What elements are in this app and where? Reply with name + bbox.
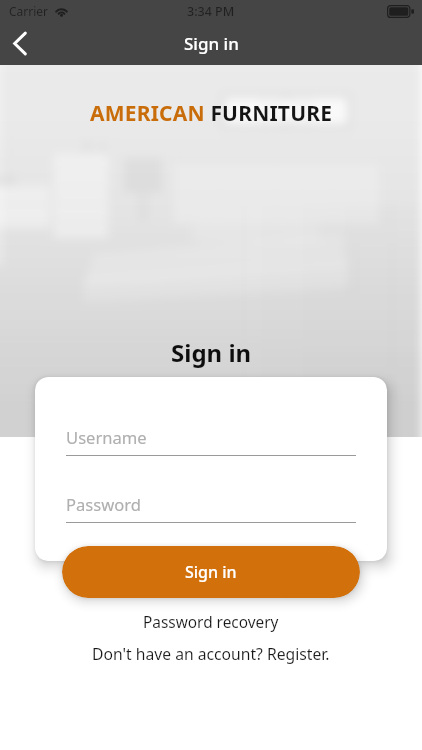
staticText: 3:34 PM <box>187 3 235 20</box>
button[interactable]: Back <box>0 22 44 65</box>
button[interactable]: Don't have an account? Register. <box>82 640 340 667</box>
staticText: Sign in <box>184 32 239 55</box>
button[interactable]: Password recovery <box>133 609 289 636</box>
staticText: AMERICAN FURNITURE <box>90 99 333 128</box>
staticText: Don't have an account? Register. <box>92 643 330 664</box>
staticText: Sign in <box>171 336 252 369</box>
staticText: Password recovery <box>143 612 279 633</box>
staticText: Carrier <box>9 3 49 19</box>
staticText: Password <box>66 493 142 516</box>
staticText: Username <box>66 426 147 449</box>
staticText: Sign in <box>185 561 237 583</box>
button[interactable]: Sign in <box>62 546 360 598</box>
